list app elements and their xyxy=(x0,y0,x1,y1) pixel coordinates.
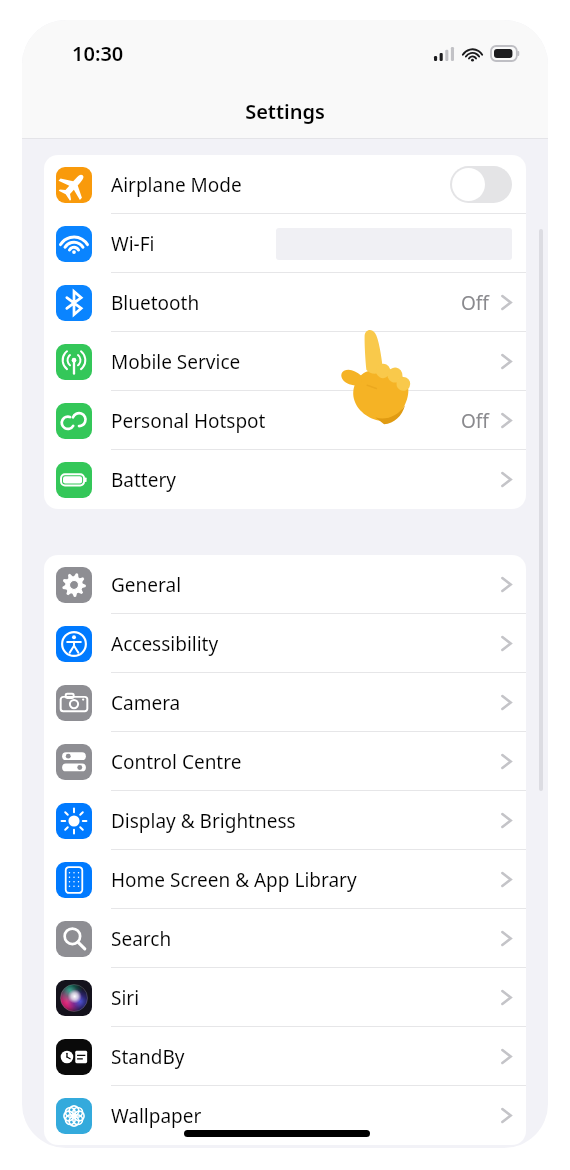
button[interactable]: General xyxy=(44,555,526,614)
button[interactable]: Airplane Mode toggle, off xyxy=(450,166,512,203)
button[interactable]: Mobile Service xyxy=(44,332,526,391)
button[interactable]: Personal Hotspot xyxy=(44,391,526,450)
button[interactable]: Home Screen & App Library xyxy=(44,850,526,909)
button[interactable]: Airplane Mode xyxy=(44,155,526,214)
staticText: Settings xyxy=(22,98,548,125)
button[interactable]: Bluetooth xyxy=(44,273,526,332)
staticText: Siri xyxy=(111,985,501,1011)
staticText: Control Centre xyxy=(111,749,501,775)
button[interactable]: Siri xyxy=(44,968,526,1027)
button[interactable]: Search xyxy=(44,909,526,968)
staticText: Off xyxy=(461,408,489,434)
staticText: Wi-Fi xyxy=(111,231,276,257)
staticText: Personal Hotspot xyxy=(111,408,461,434)
staticText: Battery xyxy=(111,467,501,493)
button[interactable]: Wallpaper xyxy=(44,1086,526,1145)
staticText: Wallpaper xyxy=(111,1103,501,1129)
staticText: 10:30 xyxy=(72,40,124,67)
button[interactable]: StandBy xyxy=(44,1027,526,1086)
staticText: General xyxy=(111,572,501,598)
staticText: Off xyxy=(461,290,489,316)
button[interactable]: Accessibility xyxy=(44,614,526,673)
staticText: Bluetooth xyxy=(111,290,461,316)
staticText: Accessibility xyxy=(111,631,501,657)
staticText: Home Screen & App Library xyxy=(111,867,501,893)
staticText: Airplane Mode xyxy=(111,172,450,198)
button[interactable]: Display & Brightness xyxy=(44,791,526,850)
staticText: Display & Brightness xyxy=(111,808,501,834)
staticText: Search xyxy=(111,926,501,952)
button[interactable]: Camera xyxy=(44,673,526,732)
button[interactable]: Battery xyxy=(44,450,526,509)
staticText: StandBy xyxy=(111,1044,501,1070)
staticText: Camera xyxy=(111,690,501,716)
button[interactable]: Control Centre xyxy=(44,732,526,791)
button[interactable]: Wi-Fi xyxy=(44,214,526,273)
staticText: Mobile Service xyxy=(111,349,501,375)
